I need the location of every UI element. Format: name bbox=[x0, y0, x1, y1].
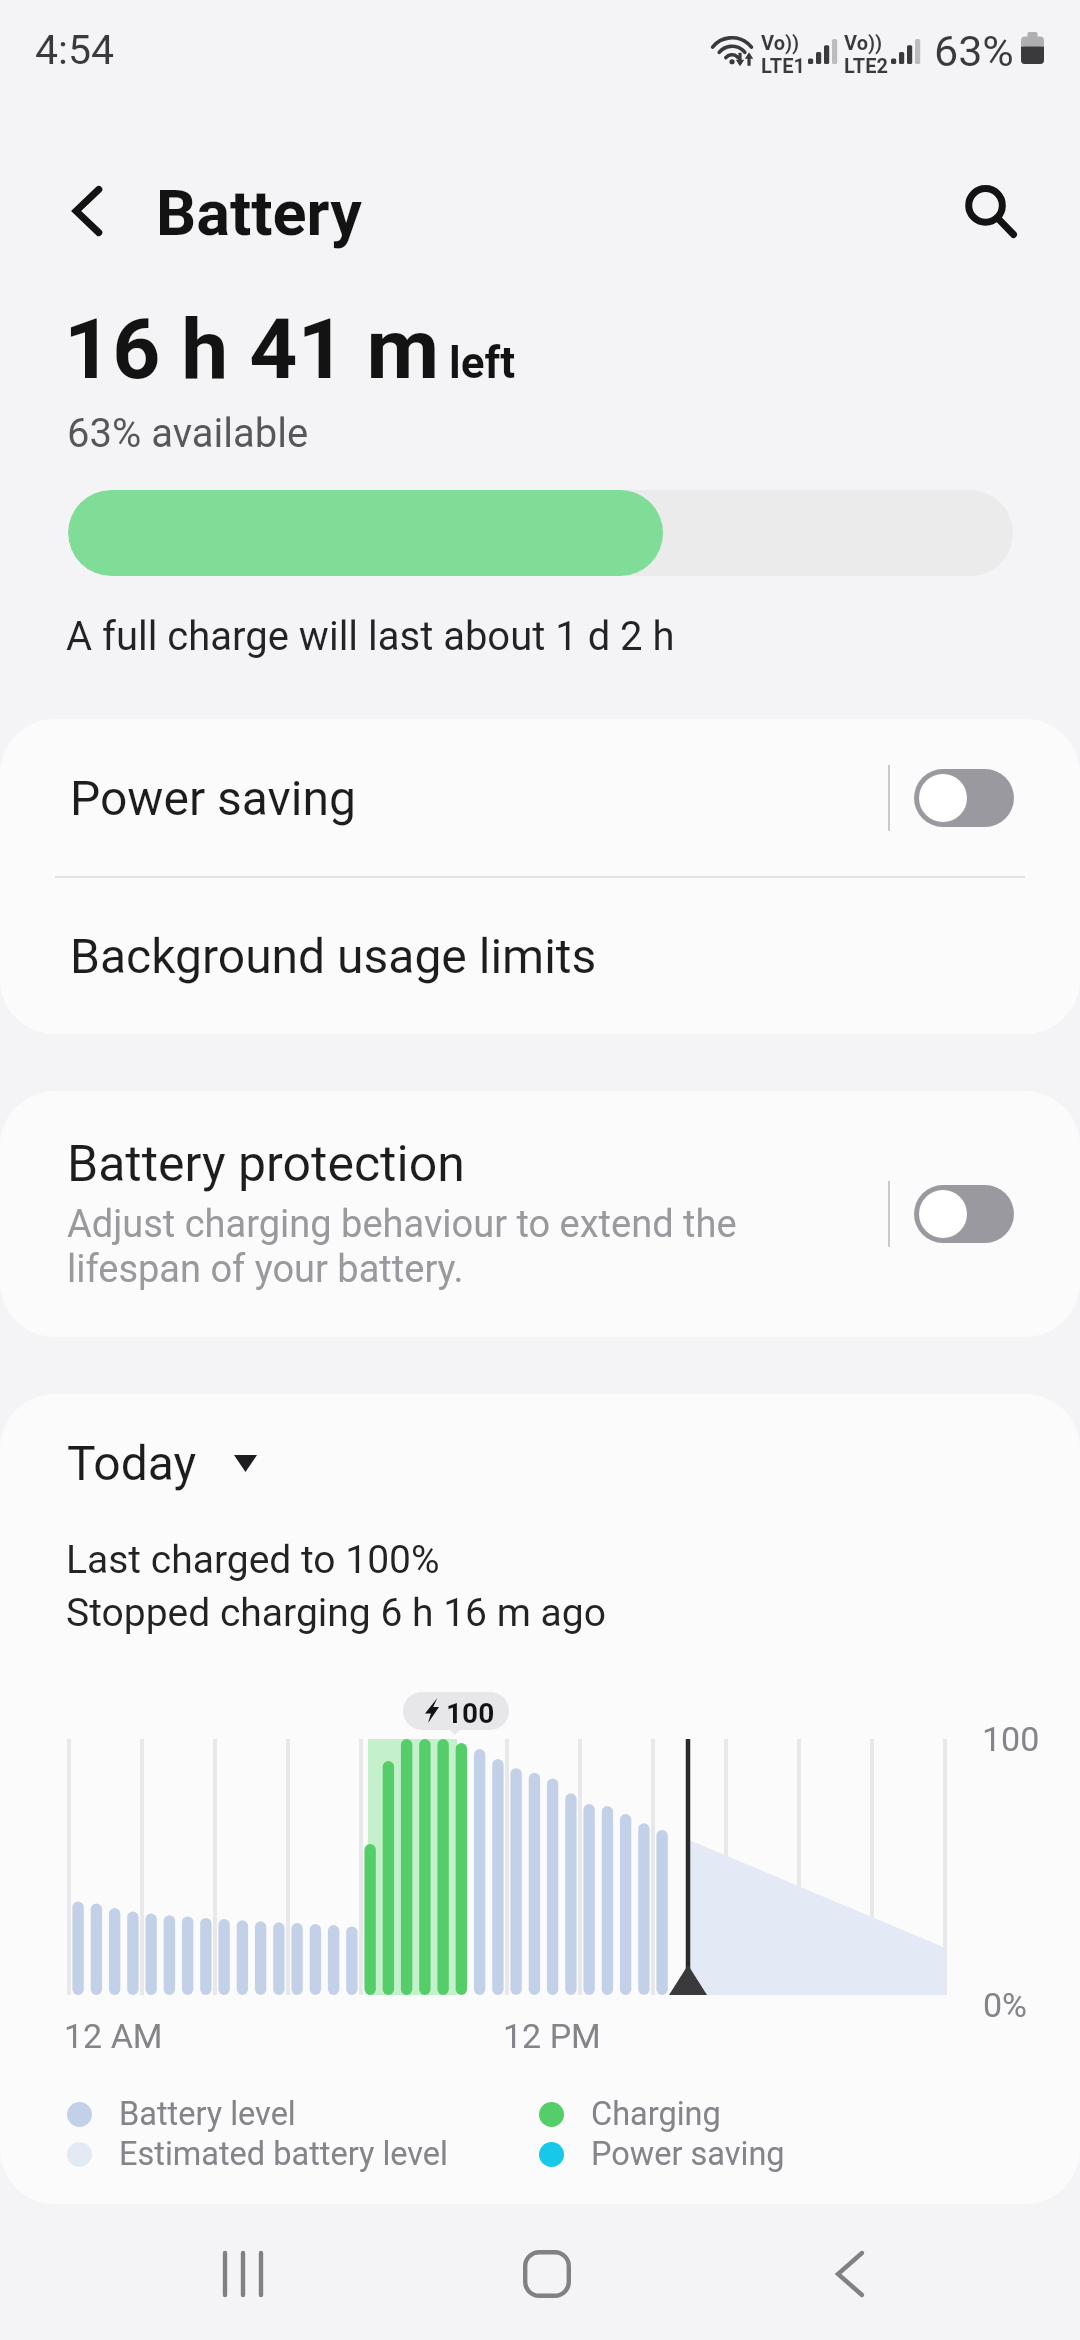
staticText: Adjust charging behaviour to extend the bbox=[67, 1202, 737, 1247]
button[interactable]: Back bbox=[790, 2214, 910, 2334]
staticText: Battery level bbox=[119, 2095, 296, 2133]
staticText: 0% bbox=[983, 1985, 1028, 2025]
staticText: Estimated battery level bbox=[119, 2135, 448, 2173]
staticText: 100 bbox=[446, 1697, 495, 1730]
staticText: Vo)) bbox=[844, 31, 883, 54]
staticText: 63% available bbox=[67, 410, 309, 457]
staticText: left bbox=[449, 337, 516, 389]
staticText: A full charge will last about 1 d 2 h bbox=[66, 613, 675, 660]
staticText: Today bbox=[67, 1435, 197, 1491]
staticText: Battery protection bbox=[67, 1135, 465, 1194]
button[interactable]: Battery protection, off bbox=[914, 1185, 1014, 1243]
staticText: Power saving bbox=[591, 2135, 785, 2173]
staticText: 16 h 41 m bbox=[64, 300, 440, 398]
staticText: Last charged to 100% bbox=[66, 1537, 440, 1583]
button[interactable]: Power saving, off bbox=[914, 769, 1014, 827]
button[interactable]: Background usage limits bbox=[0, 878, 1080, 1034]
button[interactable]: Navigate up bbox=[43, 166, 133, 256]
button[interactable]: Home bbox=[487, 2214, 607, 2334]
staticText: LTE1 bbox=[761, 54, 805, 77]
button[interactable]: Search bbox=[945, 166, 1035, 256]
staticText: 63% bbox=[934, 26, 1014, 76]
button[interactable]: Battery protection bbox=[0, 1091, 1080, 1337]
staticText: 12 AM bbox=[64, 2016, 163, 2056]
button[interactable]: Recent apps bbox=[183, 2214, 303, 2334]
staticText: LTE2 bbox=[844, 54, 888, 77]
button[interactable]: Power saving bbox=[0, 719, 1080, 876]
button[interactable]: Today bbox=[67, 1435, 257, 1491]
staticText: Battery bbox=[156, 177, 362, 251]
staticText: 4:54 bbox=[35, 26, 115, 74]
staticText: Charging bbox=[591, 2095, 721, 2133]
staticText: 12 PM bbox=[503, 2016, 601, 2056]
staticText: Vo)) bbox=[761, 31, 800, 54]
staticText: 100 bbox=[982, 1719, 1040, 1759]
staticText: lifespan of your battery. bbox=[67, 1247, 464, 1292]
staticText: Power saving bbox=[70, 770, 356, 826]
staticText: Background usage limits bbox=[70, 928, 597, 984]
staticText: Stopped charging 6 h 16 m ago bbox=[66, 1590, 606, 1636]
